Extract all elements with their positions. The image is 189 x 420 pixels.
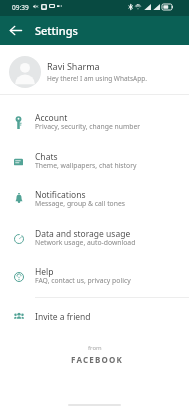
staticText: Chats <box>35 151 58 163</box>
button[interactable]: Notifications <box>0 180 189 219</box>
staticText: FACEBOOK <box>71 354 124 365</box>
button[interactable]: Help <box>0 257 189 296</box>
staticText: FAQ, contact us, privacy policy <box>35 276 131 285</box>
staticText: Data and storage usage <box>35 228 131 240</box>
staticText: Network usage, auto-download <box>35 238 136 247</box>
staticText: Privacy, security, change number <box>35 122 141 131</box>
staticText: 09:39 <box>12 3 29 12</box>
staticText: Settings <box>35 23 78 38</box>
button[interactable]: Ravi Sharma <box>0 47 189 96</box>
button[interactable]: Chats <box>0 142 189 181</box>
staticText: Help <box>35 266 54 278</box>
staticText: Ravi Sharma <box>47 60 100 72</box>
staticText: Theme, wallpapers, chat history <box>35 161 137 170</box>
button[interactable]: Account <box>0 103 189 142</box>
button[interactable]: Invite a friend <box>0 297 189 336</box>
staticText: Hey there! I am using WhatsApp. <box>47 74 147 83</box>
staticText: Invite a friend <box>35 311 91 323</box>
staticText: Account <box>35 112 68 124</box>
button[interactable]: Back <box>0 16 30 44</box>
button[interactable]: Data and storage usage <box>0 219 189 258</box>
staticText: from <box>88 344 102 352</box>
staticText: Notifications <box>35 189 86 201</box>
staticText: Message, group & call tones <box>35 199 125 208</box>
